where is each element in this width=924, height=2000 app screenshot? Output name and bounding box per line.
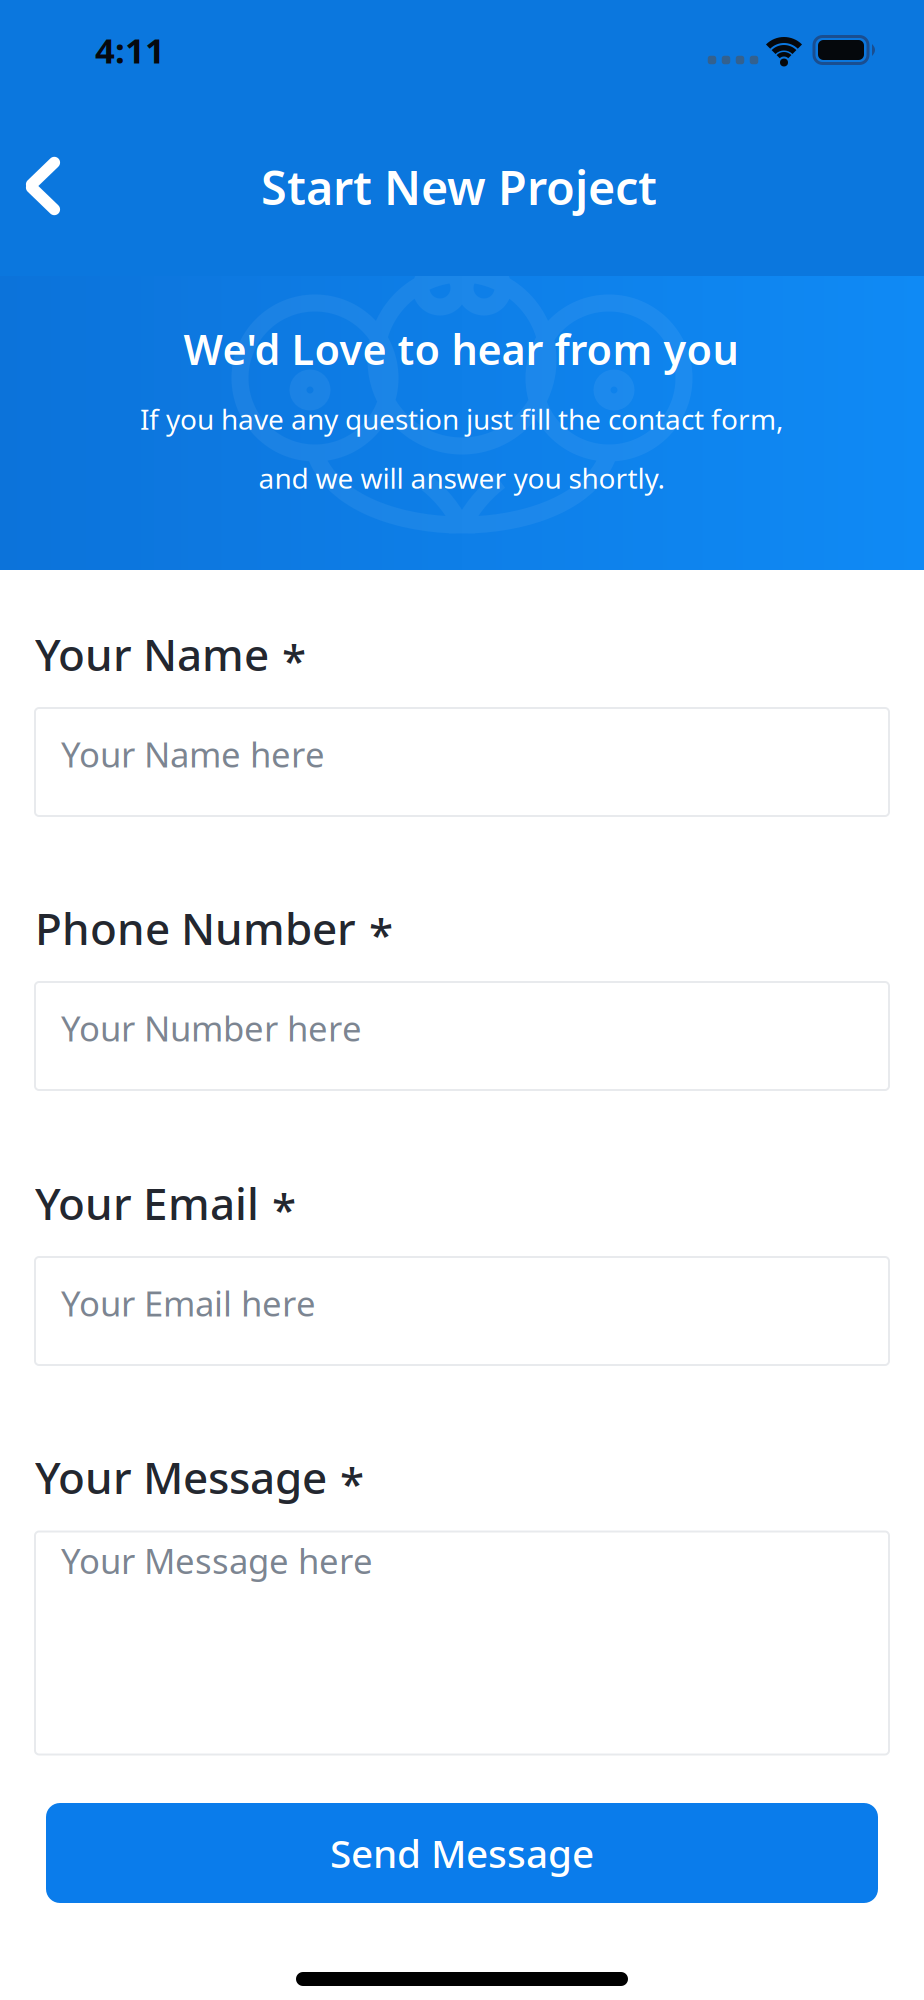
staticText: 4:11 — [95, 27, 165, 73]
staticText: Your Name — [35, 625, 269, 683]
button[interactable]: Your Email here — [35, 1257, 889, 1365]
staticText: Your Email — [35, 1174, 259, 1232]
button[interactable]: Send Message — [46, 1803, 878, 1903]
staticText: Your Email here — [61, 1280, 316, 1326]
staticText: * — [340, 1454, 364, 1512]
staticText: Send Message — [330, 1827, 594, 1879]
staticText: * — [282, 631, 306, 689]
button[interactable]: Your Number here — [35, 982, 889, 1090]
staticText: Start New Project — [261, 156, 657, 218]
button[interactable]: Your Name here — [35, 708, 889, 816]
button[interactable]: Back — [0, 153, 86, 219]
staticText: and we will answer you shortly. — [258, 459, 665, 497]
staticText: * — [272, 1180, 296, 1238]
staticText: We'd Love to hear from you — [183, 322, 738, 376]
staticText: If you have any question just fill the c… — [140, 400, 784, 438]
staticText: Your Message — [35, 1448, 327, 1506]
staticText: * — [369, 905, 393, 963]
staticText: Phone Number — [35, 899, 356, 957]
staticText: Your Number here — [61, 1005, 362, 1051]
staticText: Your Name here — [61, 731, 325, 777]
button[interactable]: Your Message here — [35, 1531, 889, 1754]
staticText: Your Message here — [61, 1537, 373, 1583]
